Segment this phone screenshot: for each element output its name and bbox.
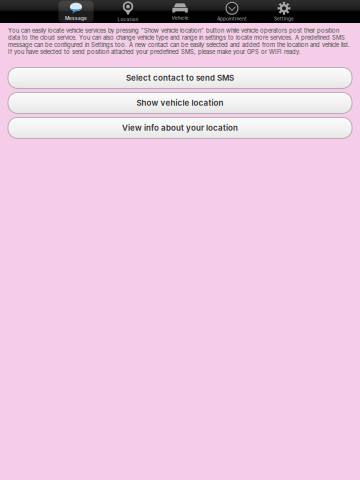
- button[interactable]: View info about your location: [8, 117, 352, 138]
- button[interactable]: Appointment: [206, 0, 258, 22]
- button[interactable]: Message: [50, 0, 102, 22]
- button[interactable]: Location: [102, 0, 154, 22]
- button[interactable]: Show vehicle location: [8, 92, 352, 113]
- staticText: You can easily locate vehicle services b…: [8, 27, 350, 55]
- staticText: Appointment: [217, 16, 247, 22]
- staticText: Show vehicle location: [136, 98, 223, 108]
- button[interactable]: Settings: [258, 0, 310, 22]
- staticText: Settings: [274, 16, 294, 22]
- staticText: Select contact to send SMS: [126, 73, 234, 83]
- staticText: View info about your location: [122, 123, 238, 133]
- button[interactable]: Select contact to send SMS: [8, 67, 352, 88]
- staticText: Vehicle: [171, 15, 188, 21]
- staticText: Message: [65, 15, 87, 21]
- button[interactable]: Vehicle: [154, 0, 206, 22]
- staticText: Location: [117, 17, 138, 22]
